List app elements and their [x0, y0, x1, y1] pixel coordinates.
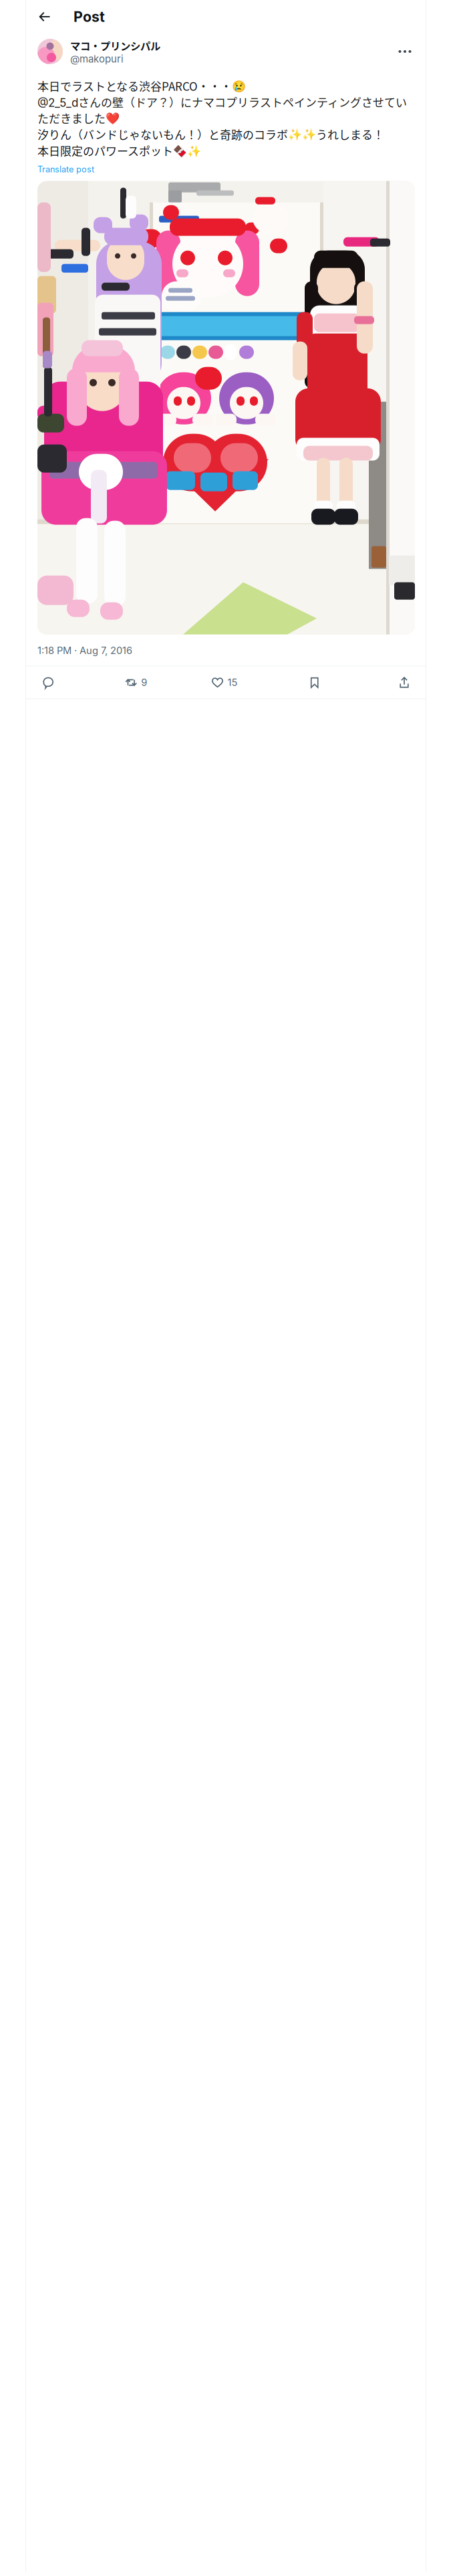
staticText: @2_5_dさんの壁（ドア？）にナマコプリラストペインティングさせていただきまし… [37, 94, 407, 126]
staticText: マコ・プリンシパル [70, 38, 160, 53]
button[interactable]: マコ・プリンシパル [37, 38, 160, 65]
button[interactable]: More [395, 41, 415, 62]
button[interactable]: Reply [35, 671, 61, 694]
button[interactable]: Share [392, 671, 417, 694]
staticText: Translate post [37, 164, 94, 174]
staticText: 汐りん（バンドじゃないもん！）と奇跡のコラボ✨✨うれしまる！ [37, 126, 384, 142]
staticText: 1:18 PM · Aug 7, 2016 [37, 644, 132, 656]
staticText: 本日でラストとなる渋谷PARCO・・・😢 [37, 78, 246, 94]
staticText: 15 [228, 677, 238, 688]
staticText: 9 [141, 677, 147, 688]
button[interactable]: 15 [211, 671, 238, 694]
staticText: Post [73, 8, 105, 25]
button[interactable]: Bookmark [302, 671, 327, 694]
button[interactable]: Back [34, 5, 55, 28]
button[interactable]: 9 [125, 671, 147, 694]
staticText: @makopuri [70, 53, 124, 65]
button[interactable]: Translate post [26, 159, 106, 176]
staticText: 本日限定のパワースポット🍫✨ [37, 142, 201, 159]
